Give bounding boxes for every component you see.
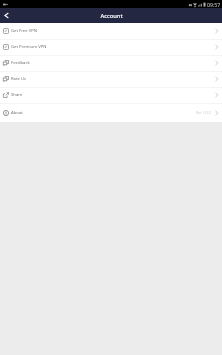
staticText: Account	[100, 12, 123, 20]
staticText: Get Premium VPN	[11, 44, 47, 50]
button[interactable]: Feedback	[0, 55, 222, 71]
staticText: Share	[11, 92, 23, 98]
button[interactable]: Get Premium VPN	[0, 39, 222, 55]
staticText: Ver 1.0.2	[196, 110, 211, 115]
button[interactable]: Rate Us	[0, 71, 222, 87]
staticText: Get Free VPN	[11, 28, 37, 34]
staticText: Feedback	[11, 60, 30, 66]
button[interactable]: Get Free VPN	[0, 23, 222, 39]
button[interactable]: Share	[0, 87, 222, 103]
staticText: 09:57	[207, 1, 221, 8]
staticText: About	[11, 110, 23, 116]
button[interactable]: Back	[0, 9, 13, 22]
button[interactable]: About	[0, 103, 222, 122]
staticText: Rate Us	[11, 76, 26, 82]
